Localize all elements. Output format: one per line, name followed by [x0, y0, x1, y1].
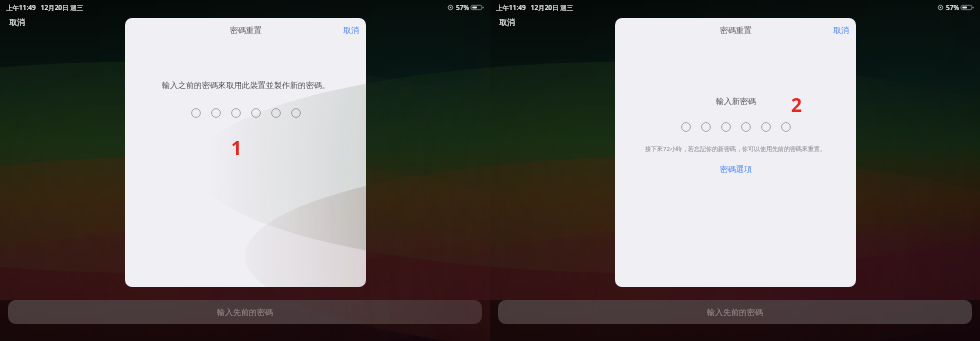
button[interactable]: 取消 [498, 16, 516, 28]
staticText: 輸入之前的密碼來取用此裝置並製作新的密碼。 [162, 80, 330, 90]
button[interactable]: 取消 [336, 22, 366, 38]
staticText: 密碼選項 [720, 164, 752, 174]
staticText: 1 [231, 135, 242, 161]
staticText: 上午11:49 12月20日 週三 [496, 3, 574, 12]
button[interactable]: 輸入先前的密碼 [498, 300, 972, 324]
staticText: 上午11:49 12月20日 週三 [6, 3, 84, 12]
button[interactable]: 輸入先前的密碼 [8, 300, 482, 324]
staticText: 57% [456, 3, 469, 12]
button[interactable]: 取消 [8, 16, 26, 28]
staticText: 取消 [499, 17, 515, 27]
staticText: 取消 [343, 25, 359, 35]
staticText: 2 [791, 92, 802, 118]
button[interactable]: 取消 [826, 22, 856, 38]
staticText: 密碼重置 [230, 25, 262, 35]
staticText: 輸入新密碼 [716, 96, 756, 106]
staticText: 57% [946, 3, 959, 12]
staticText: 輸入先前的密碼 [707, 307, 763, 317]
staticText: 取消 [9, 17, 25, 27]
button[interactable]: 密碼選項 [714, 162, 758, 176]
staticText: 密碼重置 [720, 25, 752, 35]
staticText: 接下來72小時，若忘記你的新密碼，你可以使用先前的密碼來重置。 [645, 145, 826, 153]
staticText: 輸入先前的密碼 [217, 307, 273, 317]
staticText: 取消 [833, 25, 849, 35]
